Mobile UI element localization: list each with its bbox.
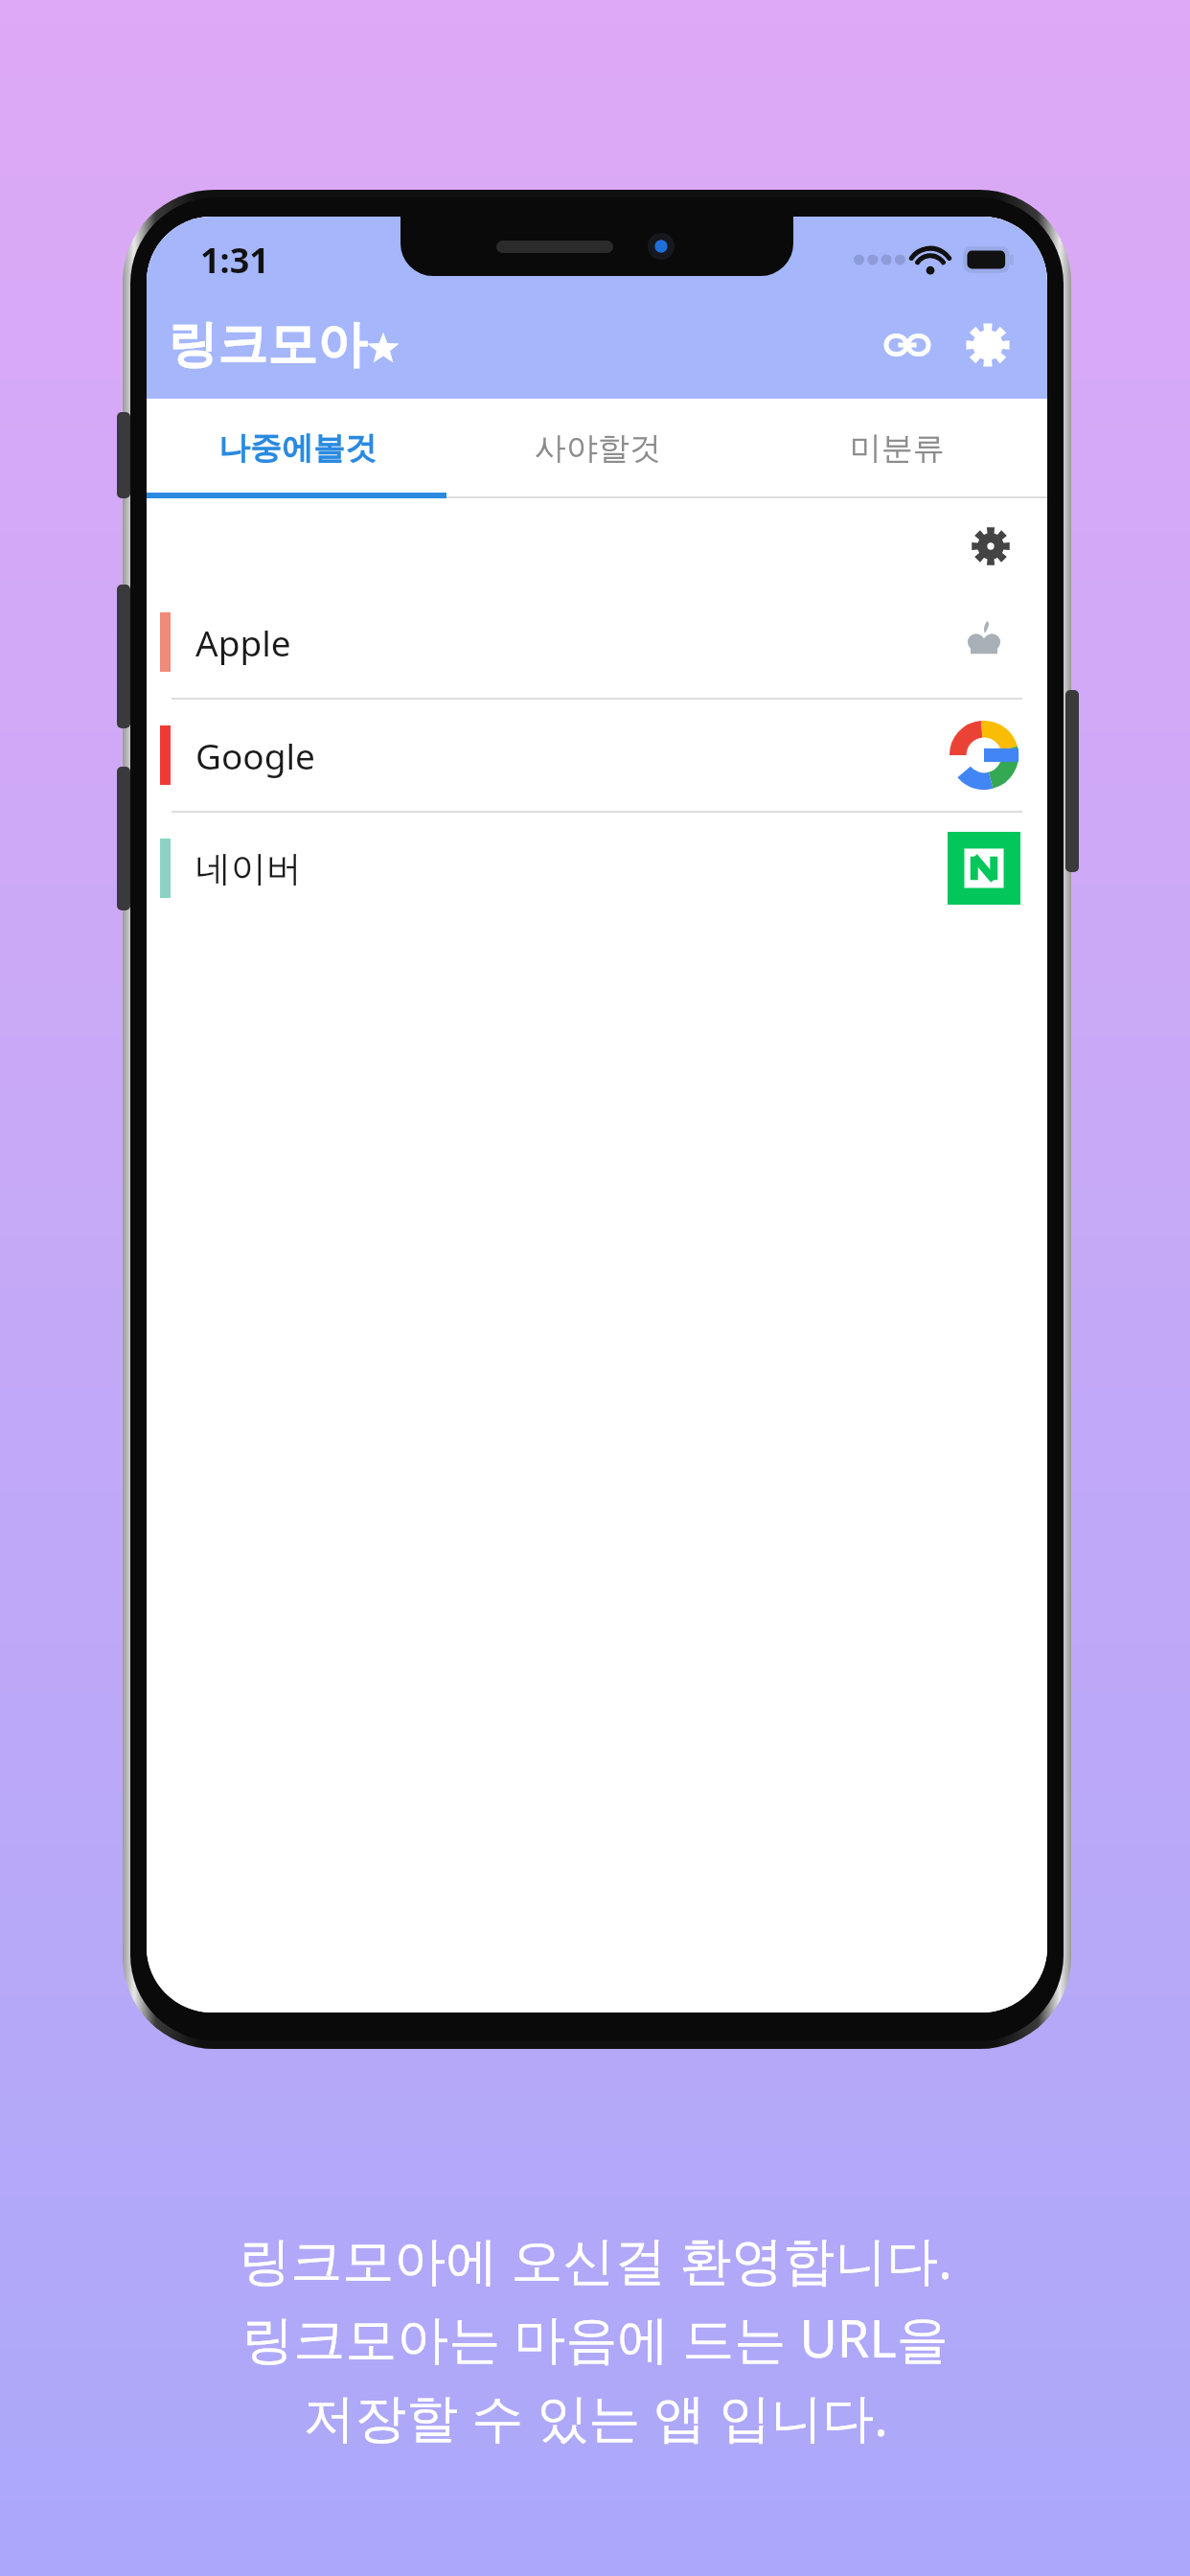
button[interactable]: 미분류 — [747, 399, 1047, 498]
button[interactable]: Google — [147, 700, 1047, 811]
staticText: 나중에볼것 — [218, 428, 377, 469]
button[interactable]: 나중에볼것 — [147, 399, 447, 498]
button[interactable]: Add link — [875, 312, 940, 378]
staticText: 링크모아에 오신걸 환영합니다. — [239, 2223, 952, 2294]
staticText: Google — [195, 731, 315, 779]
staticText: 링크모아는 마음에 드는 URL을 — [241, 2302, 949, 2373]
staticText: 네이버 — [195, 846, 302, 891]
button[interactable]: 사야할것 — [447, 399, 747, 498]
button[interactable]: 네이버 — [147, 813, 1047, 924]
staticText: 미분류 — [850, 428, 945, 469]
staticText: Apple — [195, 618, 291, 666]
staticText: 1:31 — [200, 237, 269, 284]
staticText: 저장할 수 있는 앱 입니다. — [303, 2380, 888, 2451]
staticText: 사야할것 — [535, 428, 661, 469]
button[interactable]: Settings — [955, 312, 1020, 378]
staticText: 링크모아 — [168, 313, 367, 377]
button[interactable]: Edit categories — [959, 515, 1022, 578]
button[interactable]: Apple — [147, 586, 1047, 698]
